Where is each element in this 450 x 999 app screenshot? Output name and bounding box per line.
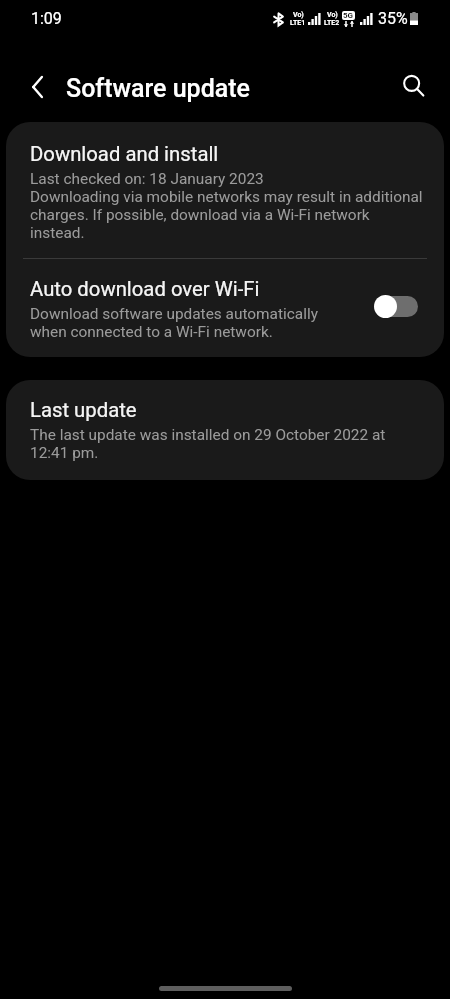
staticText: Vo) (327, 11, 338, 19)
staticText: Software update (66, 74, 250, 103)
button[interactable]: Back (17, 65, 61, 109)
button[interactable]: Last update (6, 380, 444, 480)
staticText: Vo) (293, 11, 304, 19)
staticText: 1:09 (31, 9, 62, 28)
button[interactable]: Auto download over Wi-Fi (6, 259, 444, 357)
staticText: LTE2 (324, 19, 340, 27)
staticText: Last update (30, 398, 137, 422)
staticText: Auto download over Wi-Fi (30, 277, 260, 301)
staticText: LTE1 (290, 19, 306, 27)
staticText: Download and install (30, 142, 219, 166)
staticText: 35% (378, 9, 408, 28)
staticText: Last checked on: 18 January 2023 Downloa… (30, 170, 427, 242)
button[interactable]: Search (392, 65, 436, 109)
staticText: 5G (343, 11, 354, 20)
button[interactable]: Auto download over Wi-Fi (374, 294, 418, 318)
staticText: Download software updates automatically … (30, 305, 350, 341)
button[interactable]: Download and install (6, 122, 444, 258)
staticText: The last update was installed on 29 Octo… (30, 426, 427, 462)
